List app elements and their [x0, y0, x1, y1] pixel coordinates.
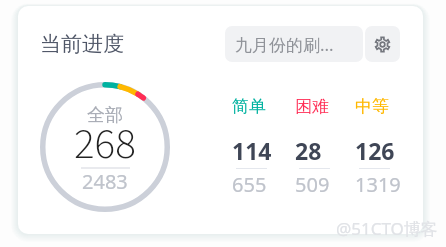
staticText: 九月份的刷... — [235, 33, 334, 56]
staticText: @51CTO博客 — [336, 217, 438, 240]
staticText: 中等 — [355, 96, 389, 117]
staticText: 全部 — [87, 104, 123, 127]
button[interactable]: 简单 — [232, 96, 280, 198]
button[interactable]: 困难 — [295, 96, 343, 198]
staticText: 2483 — [82, 168, 128, 195]
staticText: 114 — [232, 135, 272, 166]
staticText: 126 — [355, 135, 395, 166]
staticText: 268 — [74, 114, 136, 175]
button[interactable]: Settings — [365, 26, 400, 62]
staticText: 655 — [232, 171, 267, 198]
staticText: 1319 — [355, 171, 401, 198]
staticText: 28 — [295, 135, 322, 166]
staticText: 509 — [295, 171, 330, 198]
button[interactable]: 中等 — [355, 96, 403, 198]
staticText: 困难 — [295, 96, 329, 117]
staticText: 简单 — [232, 96, 266, 117]
button[interactable]: 九月份的刷... — [225, 26, 363, 62]
staticText: 当前进度 — [40, 31, 124, 57]
